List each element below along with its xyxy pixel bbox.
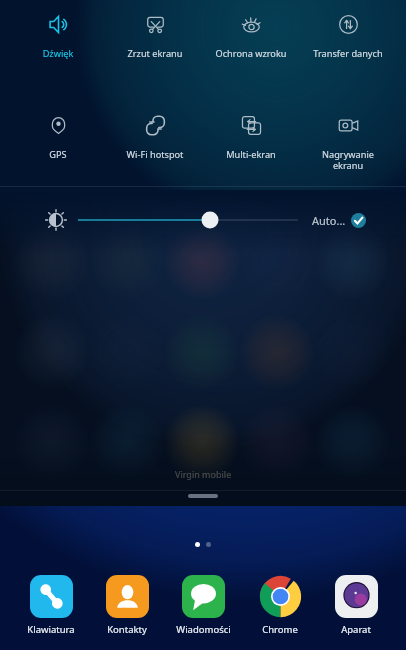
button[interactable]: Aparat [318,575,394,636]
staticText: Kontakty [107,623,147,636]
button[interactable]: Klawiatura [13,575,89,636]
button[interactable]: Multi-ekran [206,115,296,161]
staticText: Multi-ekran [212,148,290,161]
button[interactable]: Transfer danych [303,14,393,60]
staticText: Klawiatura [27,623,75,636]
button[interactable]: Wi-Fi hotspot [110,115,200,161]
button[interactable]: Ochrona wzroku [206,14,296,60]
staticText: Transfer danych [309,47,387,60]
staticText: Ochrona wzroku [212,47,290,60]
staticText: Dźwięk [19,47,97,60]
button[interactable]: Zrzut ekranu [110,14,200,60]
button[interactable]: Kontakty [89,575,165,636]
button[interactable]: Dźwięk [13,14,103,60]
staticText: Aparat [341,623,371,636]
staticText: Chrome [262,623,298,636]
staticText: Auto... [312,213,346,228]
button[interactable]: GPS [13,115,103,161]
staticText: Nagrywanie ekranu [309,148,387,172]
button[interactable]: Auto brightness [351,213,366,228]
button[interactable]: Wiadomości [165,575,241,636]
staticText: Wi-Fi hotspot [116,148,194,161]
button[interactable]: Collapse panel [188,494,218,498]
button[interactable]: Nagrywanie ekranu [303,115,393,172]
button[interactable]: Chrome [242,575,318,636]
staticText: GPS [19,148,97,161]
staticText: Virgin mobile [175,468,232,480]
staticText: Wiadomości [176,623,231,636]
staticText: Zrzut ekranu [116,47,194,60]
